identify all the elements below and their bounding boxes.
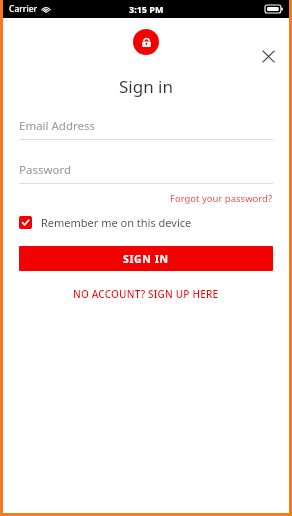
button[interactable]: Forgot your password? <box>170 192 273 205</box>
staticText: SIGN IN <box>123 252 169 266</box>
button[interactable]: SIGN IN <box>19 246 273 271</box>
staticText: Password <box>19 162 72 178</box>
staticText: Carrier <box>9 3 38 15</box>
button[interactable]: Email Address <box>19 118 273 140</box>
staticText: Remember me on this device <box>41 215 192 230</box>
button[interactable]: NO ACCOUNT? SIGN UP HERE <box>73 287 219 301</box>
staticText: Forgot your password? <box>170 192 273 205</box>
staticText: 3:15 PM <box>129 3 164 15</box>
button[interactable]: Password <box>19 162 273 184</box>
button[interactable]: Remember me on this device <box>19 215 289 230</box>
staticText: NO ACCOUNT? SIGN UP HERE <box>73 287 219 301</box>
button[interactable]: Secure sign in <box>133 29 159 55</box>
button[interactable]: Close <box>257 45 279 67</box>
staticText: Sign in <box>3 75 289 98</box>
staticText: Email Address <box>19 118 96 134</box>
